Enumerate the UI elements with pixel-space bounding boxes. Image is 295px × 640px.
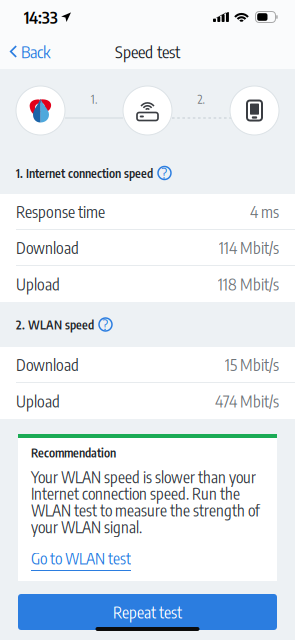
staticText: 118 Mbit/s [218, 274, 279, 294]
staticText: 4 ms [250, 201, 279, 221]
staticText: Response time [16, 201, 105, 221]
button[interactable]: Help [99, 318, 112, 331]
staticText: Upload [16, 274, 60, 294]
staticText: 474 Mbit/s [215, 391, 279, 411]
staticText: Recommendation [31, 445, 116, 460]
staticText: Your WLAN speed is slower than your Inte… [31, 467, 260, 537]
staticText: Download [16, 354, 79, 374]
staticText: Speed test [115, 41, 180, 62]
button[interactable]: Repeat test [18, 594, 277, 630]
staticText: 2. WLAN speed [16, 317, 94, 332]
button[interactable]: Help [158, 166, 171, 179]
staticText: Download [16, 237, 79, 257]
staticText: 2. [197, 91, 204, 106]
staticText: 14:33 [24, 7, 58, 27]
button[interactable]: Back [0, 36, 60, 66]
staticText: Back [21, 41, 50, 62]
staticText: ? [102, 316, 108, 333]
staticText: Repeat test [113, 602, 182, 622]
staticText: 114 Mbit/s [219, 237, 279, 257]
staticText: 1. [91, 91, 97, 106]
button[interactable]: Go to WLAN test [31, 548, 131, 571]
staticText: 1. Internet connection speed [16, 165, 153, 181]
staticText: Upload [16, 391, 60, 411]
staticText: Go to WLAN test [31, 548, 131, 568]
staticText: ? [161, 164, 167, 182]
staticText: 15 Mbit/s [225, 354, 279, 374]
